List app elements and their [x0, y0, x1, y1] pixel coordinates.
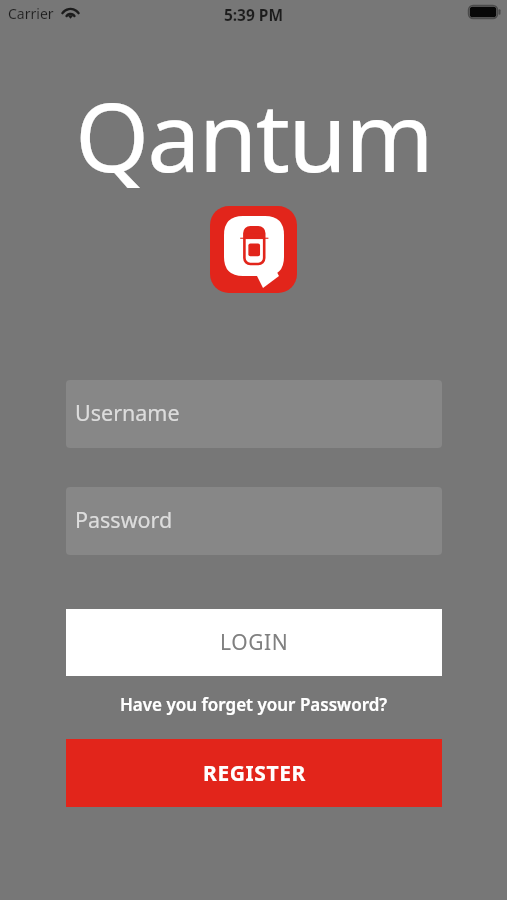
staticText: Username — [75, 398, 180, 427]
staticText: Carrier — [8, 4, 54, 23]
button[interactable]: Password — [66, 487, 442, 555]
button[interactable]: Have you forget your Password? — [0, 690, 507, 718]
staticText: Qantum — [0, 70, 507, 199]
staticText: LOGIN — [220, 628, 289, 657]
button[interactable]: Username — [66, 380, 442, 448]
staticText: Password — [75, 505, 173, 534]
button[interactable]: REGISTER — [66, 739, 442, 807]
button[interactable]: LOGIN — [66, 609, 442, 676]
staticText: Have you forget your Password? — [120, 693, 388, 716]
staticText: REGISTER — [203, 759, 306, 788]
staticText: 5:39 PM — [0, 4, 507, 25]
